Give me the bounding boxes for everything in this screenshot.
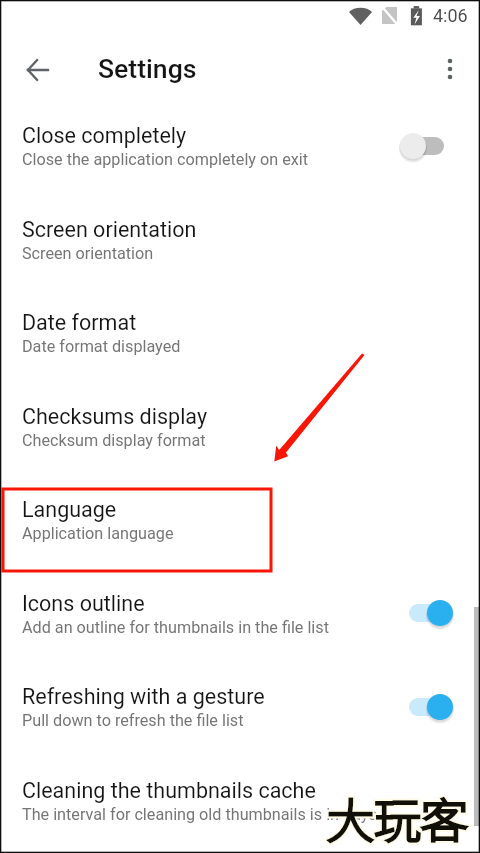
staticText: Date format displayed <box>22 337 181 356</box>
staticText: Cleaning the thumbnails cache <box>22 778 316 803</box>
staticText: Date format <box>22 310 137 335</box>
button[interactable] <box>0 190 480 283</box>
staticText: 大玩客 <box>327 783 468 851</box>
button[interactable] <box>0 377 480 470</box>
button[interactable] <box>0 284 480 377</box>
staticText: Icons outline <box>22 591 145 616</box>
button[interactable]: Back <box>11 43 63 95</box>
button[interactable]: More options <box>428 47 472 91</box>
button[interactable]: Toggle on <box>400 687 456 727</box>
staticText: 大玩客 <box>327 783 468 851</box>
staticText: Screen orientation <box>22 217 197 242</box>
staticText: The interval for cleaning old thumbnails… <box>22 805 377 824</box>
button[interactable] <box>0 751 480 844</box>
button[interactable] <box>0 658 480 751</box>
button[interactable]: Toggle on <box>400 593 456 633</box>
staticText: Close the application completely on exit <box>22 150 309 169</box>
button[interactable] <box>0 97 480 190</box>
staticText: Checksum display format <box>22 431 206 450</box>
staticText: Refreshing with a gesture <box>22 684 265 709</box>
staticText: Application language <box>22 524 174 543</box>
staticText: Add an outline for thumbnails in the fil… <box>22 618 329 637</box>
staticText: Pull down to refresh the file list <box>22 711 244 730</box>
button[interactable]: Toggle off <box>400 126 456 166</box>
button[interactable] <box>0 564 480 657</box>
staticText: 大玩客 <box>327 783 468 851</box>
staticText: 4:06 <box>433 5 468 26</box>
staticText: Close completely <box>22 123 187 148</box>
staticText: Language <box>22 497 117 522</box>
staticText: Checksums display <box>22 404 208 429</box>
button[interactable] <box>0 471 480 564</box>
staticText: Screen orientation <box>22 244 154 263</box>
staticText: Settings <box>98 53 197 84</box>
